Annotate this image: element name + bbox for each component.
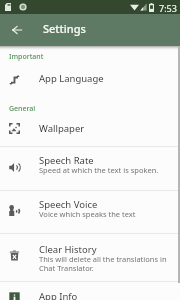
button[interactable]: Clear History (0, 243, 180, 275)
staticText: Settings (43, 21, 86, 36)
staticText: Clear History (39, 243, 97, 256)
staticText: General (9, 104, 36, 114)
staticText: App Language (39, 72, 104, 85)
button[interactable]: App Info (0, 290, 180, 300)
button[interactable]: Speech Rate (0, 154, 180, 177)
staticText: Wallpaper (39, 122, 85, 135)
staticText: Voice which speaks the text (39, 209, 136, 219)
staticText: Speech Rate (39, 154, 94, 167)
button[interactable]: Speech Voice (0, 198, 180, 221)
button[interactable]: Back (3, 16, 31, 44)
staticText: App Info (39, 290, 78, 300)
staticText: This will delete all the translations in… (39, 254, 170, 273)
staticText: Speed at which the text is spoken. (39, 165, 159, 175)
staticText: 7:53 (159, 2, 177, 14)
button[interactable]: App Language (0, 72, 180, 85)
staticText: Important (9, 52, 44, 62)
staticText: Speech Voice (39, 198, 98, 211)
button[interactable]: Wallpaper (0, 122, 180, 135)
